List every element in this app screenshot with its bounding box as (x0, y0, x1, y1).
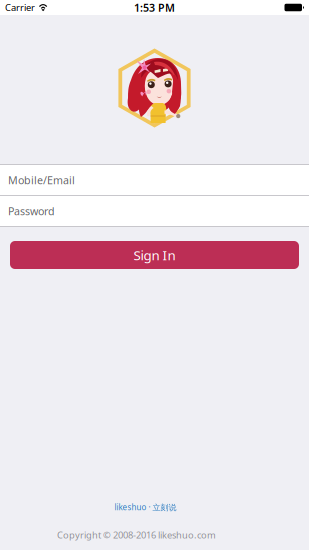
staticText: Password (8, 204, 55, 218)
staticText: Sign In (133, 246, 175, 264)
staticText: likeshuo · 立刻说 (114, 502, 176, 513)
staticText: 1:53 PM (134, 0, 175, 15)
button[interactable]: Mobile/Email (0, 165, 309, 195)
button[interactable]: likeshuo · 立刻说 (114, 502, 176, 513)
staticText: Mobile/Email (8, 173, 75, 187)
staticText: Copyright © 2008-2016 likeshuo.com (57, 529, 216, 541)
staticText: Carrier (5, 1, 35, 14)
button[interactable]: Sign In (10, 241, 299, 269)
button[interactable]: Password (0, 196, 309, 226)
